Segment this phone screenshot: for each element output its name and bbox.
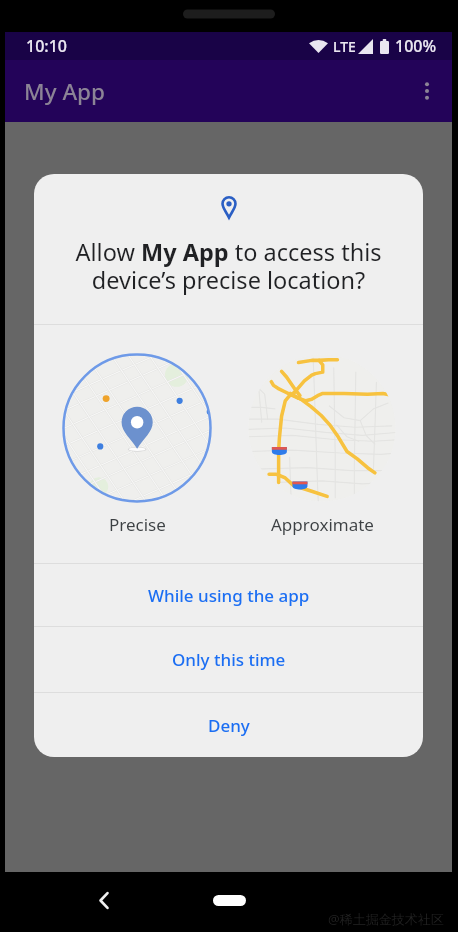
button[interactable]: Deny — [34, 693, 423, 757]
button[interactable]: Home — [197, 882, 261, 918]
button[interactable]: Only this time — [34, 627, 423, 692]
button[interactable]: Back — [86, 882, 122, 918]
staticText: 100% — [395, 35, 437, 57]
staticText: @稀土掘金技术社区 — [328, 910, 444, 928]
staticText: Precise — [109, 513, 166, 536]
staticText: Allow My App to access this device’s pre… — [48, 236, 409, 296]
button[interactable]: Precise — [59, 325, 215, 536]
staticText: My App — [24, 76, 106, 107]
button[interactable]: More options — [407, 71, 447, 111]
staticText: Deny — [208, 714, 250, 737]
staticText: Approximate — [271, 513, 374, 536]
staticText: LTE — [333, 37, 356, 56]
staticText: Only this time — [172, 648, 286, 671]
staticText: 10:10 — [26, 35, 67, 57]
button[interactable]: While using the app — [34, 564, 423, 626]
staticText: While using the app — [148, 584, 310, 607]
button[interactable]: Approximate — [244, 325, 400, 536]
